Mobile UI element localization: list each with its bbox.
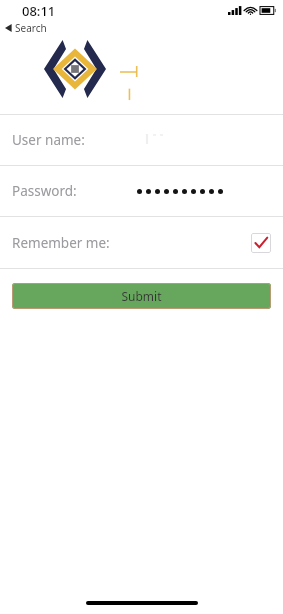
staticText: Submit <box>121 288 162 304</box>
staticText: Search <box>15 21 47 35</box>
button[interactable]: User name: <box>0 115 283 165</box>
button[interactable]: Password: <box>0 166 283 216</box>
button[interactable]: Remember me: <box>0 217 283 268</box>
staticText: User name: <box>12 131 85 149</box>
button[interactable]: Remember me checkbox <box>251 233 271 253</box>
staticText: Password: <box>12 182 77 200</box>
staticText: 08:11 <box>22 2 56 20</box>
staticText: Remember me: <box>12 234 110 252</box>
button[interactable]: Submit <box>12 283 271 309</box>
button[interactable]: Search <box>5 20 283 36</box>
